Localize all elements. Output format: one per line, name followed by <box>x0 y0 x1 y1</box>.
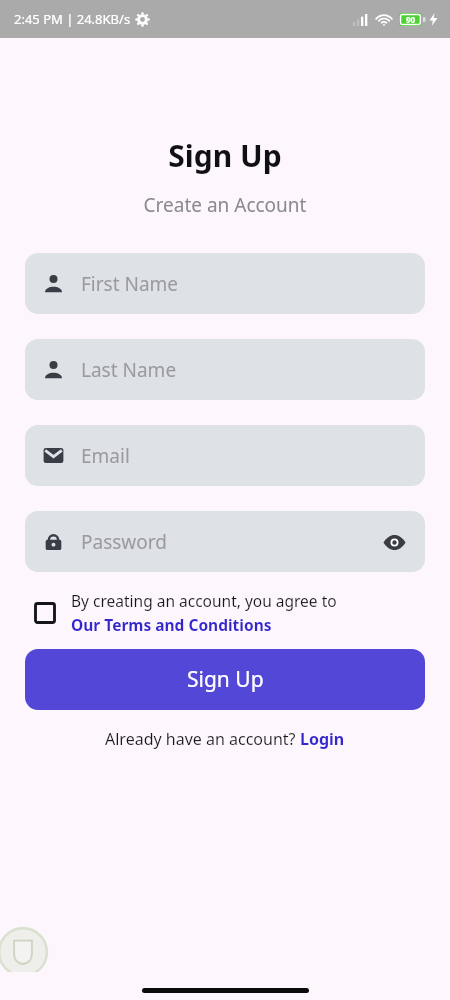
button[interactable]: Last Name <box>25 339 425 400</box>
staticText: Sign Up <box>187 665 264 694</box>
button[interactable]: Toggle password visibility <box>380 528 408 556</box>
staticText: First Name <box>81 271 408 297</box>
staticText: Sign Up <box>0 135 450 176</box>
staticText: 90 <box>406 14 416 25</box>
button[interactable]: Email <box>25 425 425 486</box>
staticText: By creating an account, you agree to <box>71 590 337 611</box>
staticText: Create an Account <box>0 192 450 218</box>
button[interactable]: By creating an account, you agree to <box>25 590 425 635</box>
button[interactable]: Sign Up <box>25 649 425 710</box>
staticText: 2:45 PM | 24.8KB/s <box>14 10 131 28</box>
button[interactable]: Password <box>25 511 425 572</box>
staticText: Password <box>81 529 380 555</box>
button[interactable]: First Name <box>25 253 425 314</box>
staticText: Last Name <box>81 357 408 383</box>
staticText: Already have an account? <box>105 728 300 750</box>
button[interactable]: Login <box>300 728 345 750</box>
staticText: Email <box>81 443 408 469</box>
button[interactable]: Our Terms and Conditions <box>71 614 272 635</box>
